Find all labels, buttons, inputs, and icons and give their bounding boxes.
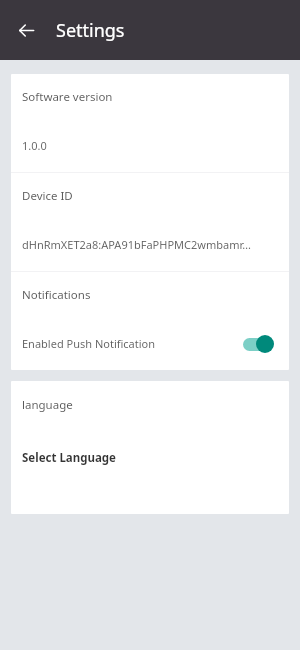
staticText: Enabled Push Notification [22, 336, 241, 351]
staticText: language [22, 397, 73, 413]
button[interactable]: Back [6, 10, 46, 50]
button[interactable]: 1.0.0 [11, 119, 289, 172]
button[interactable]: Enabled Push Notification [11, 317, 289, 370]
staticText: Device ID [22, 188, 73, 204]
staticText: dHnRmXET2a8:APA91bFaPHPMC2wmbamr… [22, 237, 277, 252]
staticText: Select Language [22, 450, 116, 466]
button[interactable]: Select Language [11, 429, 289, 487]
staticText: Software version [22, 89, 113, 105]
button[interactable]: dHnRmXET2a8:APA91bFaPHPMC2wmbamr… [11, 218, 289, 271]
staticText: Settings [56, 18, 125, 43]
staticText: 1.0.0 [22, 138, 277, 153]
staticText: Notifications [22, 287, 91, 303]
button[interactable]: Enable push notifications [241, 333, 277, 355]
